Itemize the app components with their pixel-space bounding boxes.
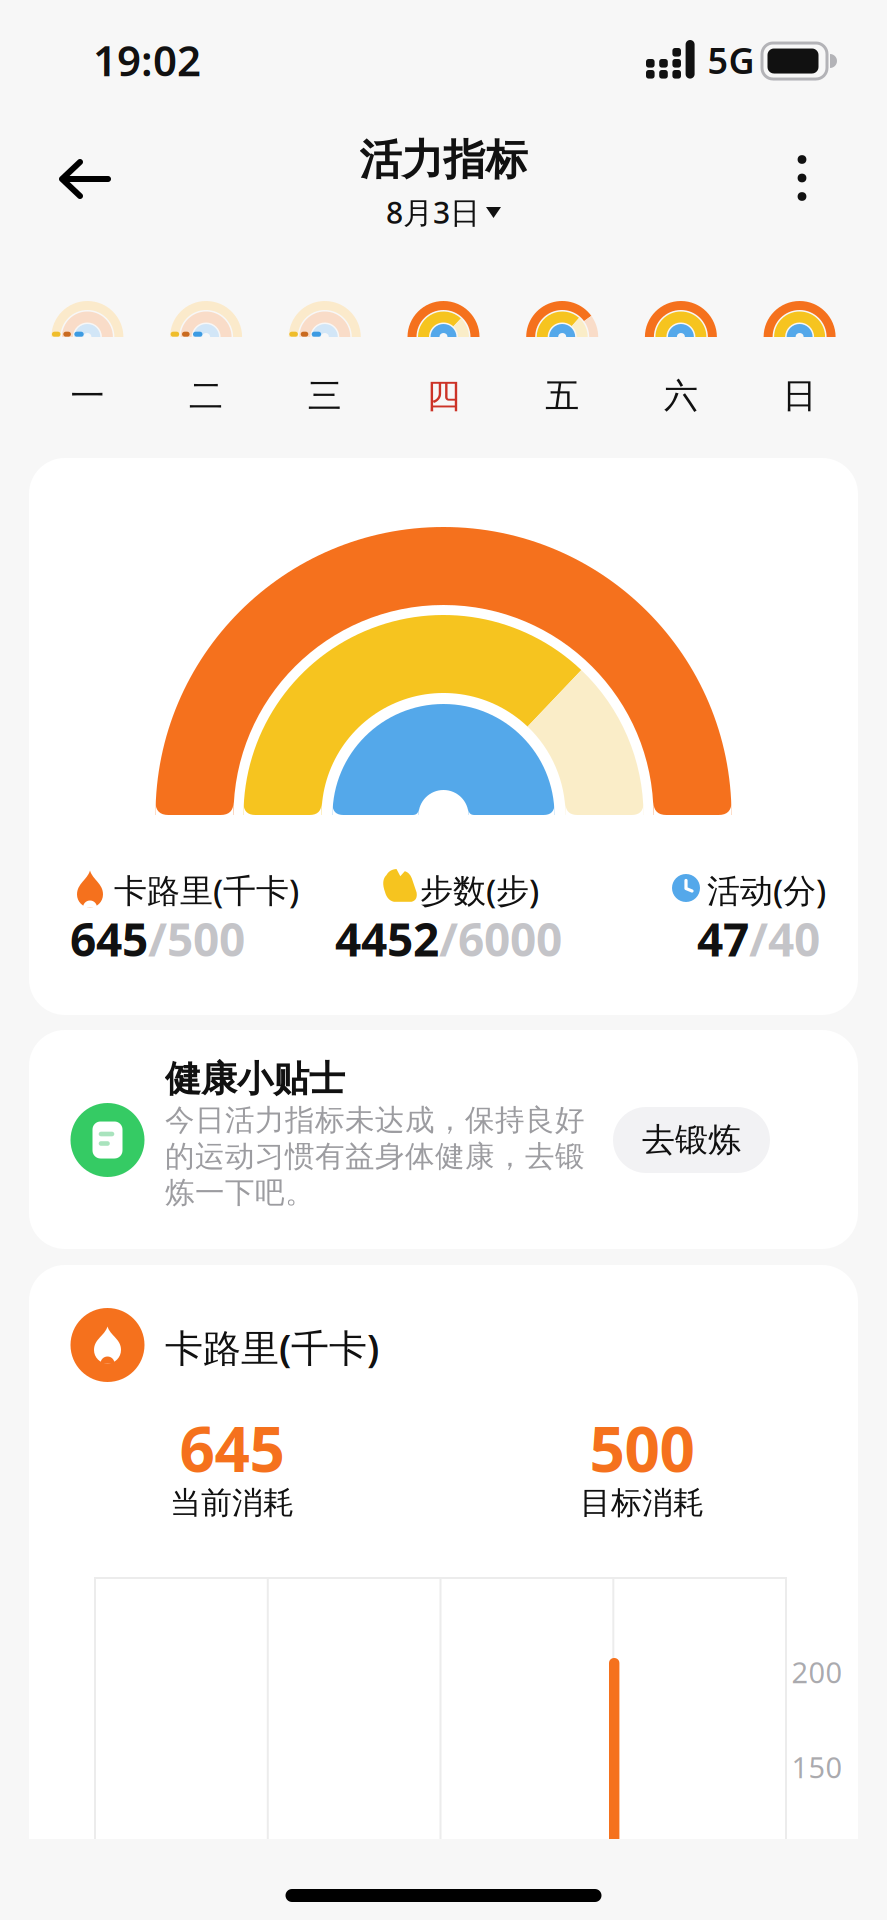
staticText: /40	[749, 908, 820, 969]
staticText: 去锻炼	[642, 1120, 741, 1160]
staticText: 当前消耗	[170, 1484, 294, 1522]
staticText: 活力指标	[359, 134, 527, 186]
staticText: 卡路里(千卡)	[165, 1322, 379, 1372]
staticText: 645	[70, 908, 148, 969]
staticText: 645	[179, 1407, 284, 1489]
staticText: 8月3日	[386, 192, 480, 232]
staticText: 二	[189, 375, 223, 417]
button[interactable]: 四	[393, 301, 493, 421]
staticText: 五	[545, 375, 579, 417]
button[interactable]: 去锻炼	[613, 1107, 770, 1173]
staticText: 日	[783, 375, 817, 417]
button[interactable]	[57, 154, 117, 204]
staticText: 今日活力指标未达成，保持良好 的运动习惯有益身体健康，去锻 炼一下吧。	[165, 1102, 585, 1211]
staticText: 200	[791, 1653, 842, 1691]
staticText: 19:02	[93, 32, 201, 88]
staticText: 150	[791, 1748, 842, 1786]
staticText: 卡路里(千卡)	[114, 868, 299, 912]
button[interactable]: 一	[37, 301, 137, 421]
staticText: 健康小贴士	[165, 1057, 345, 1101]
staticText: 六	[664, 375, 698, 417]
staticText: 500	[589, 1407, 694, 1489]
button[interactable]: 8月3日	[386, 192, 501, 232]
button[interactable]: 六	[631, 301, 731, 421]
button[interactable]: 三	[275, 301, 375, 421]
staticText: 四	[426, 375, 460, 417]
staticText: 目标消耗	[580, 1484, 704, 1522]
staticText: /500	[148, 908, 245, 969]
staticText: 47	[697, 908, 749, 969]
staticText: 一	[70, 375, 104, 417]
button[interactable]	[781, 148, 823, 207]
staticText: 活动(分)	[707, 868, 826, 912]
staticText: 5G	[707, 36, 754, 84]
staticText: 4452	[335, 908, 439, 969]
staticText: 三	[308, 375, 342, 417]
staticText: 步数(步)	[420, 868, 539, 912]
button[interactable]: 日	[750, 301, 850, 421]
button[interactable]: 五	[512, 301, 612, 421]
staticText: /6000	[439, 908, 562, 969]
button[interactable]: 二	[156, 301, 256, 421]
